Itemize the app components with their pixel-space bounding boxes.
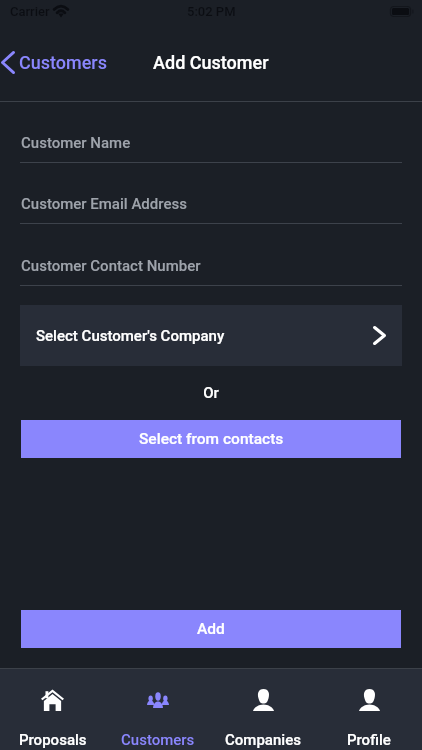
button[interactable]: Proposals xyxy=(0,669,105,750)
button[interactable]: Select from contacts xyxy=(21,420,401,458)
staticText: Customer Email Address xyxy=(21,195,187,213)
staticText: Companies xyxy=(225,731,301,749)
staticText: Select from contacts xyxy=(139,430,284,448)
staticText: Carrier xyxy=(10,4,50,19)
button[interactable]: Select Customer's Company xyxy=(20,305,402,366)
button[interactable]: Customer Email Address xyxy=(20,189,402,223)
button[interactable]: Profile xyxy=(316,669,422,750)
button[interactable]: Companies xyxy=(210,669,316,750)
staticText: Or xyxy=(0,384,422,402)
staticText: Customer Contact Number xyxy=(21,257,201,275)
staticText: 5:02 PM xyxy=(187,4,236,19)
button[interactable]: Customers xyxy=(105,669,210,750)
button[interactable]: Customers xyxy=(0,46,107,79)
staticText: Customers xyxy=(19,52,107,73)
staticText: Add Customer xyxy=(153,52,269,73)
button[interactable]: Customer Name xyxy=(20,128,402,162)
button[interactable]: Add xyxy=(21,610,401,648)
staticText: Add xyxy=(197,620,225,638)
staticText: Proposals xyxy=(19,731,87,749)
button[interactable]: Customer Contact Number xyxy=(20,251,402,285)
staticText: Customer Name xyxy=(21,134,131,152)
staticText: Profile xyxy=(347,731,391,749)
staticText: Select Customer's Company xyxy=(36,327,225,345)
staticText: Customers xyxy=(121,731,195,749)
